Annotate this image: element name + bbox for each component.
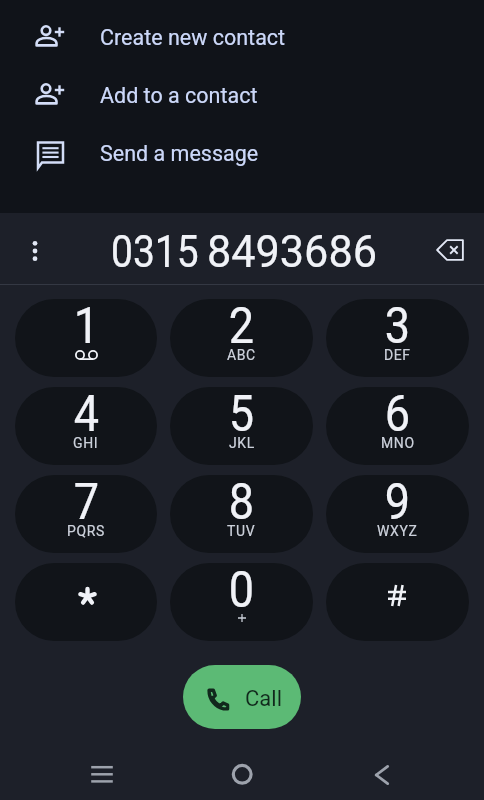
button[interactable]: Back — [355, 748, 407, 800]
staticText: 7 — [73, 475, 99, 532]
button[interactable]: 8 — [170, 475, 313, 553]
staticText: 1 — [73, 299, 99, 356]
staticText: 0 — [228, 563, 254, 620]
staticText: ABC — [227, 347, 256, 363]
staticText: DEF — [384, 347, 411, 363]
button[interactable]: 7 — [15, 475, 157, 553]
staticText: 4 — [73, 387, 99, 444]
button[interactable]: Create new contact — [0, 9, 484, 67]
button[interactable]: 5 — [170, 387, 313, 465]
staticText: WXYZ — [377, 523, 418, 539]
staticText: JKL — [229, 435, 255, 451]
staticText: Create new contact — [100, 25, 286, 50]
staticText: 8 — [228, 475, 254, 532]
button[interactable]: Backspace — [430, 230, 470, 270]
button[interactable]: 1 — [15, 299, 157, 377]
button[interactable] — [326, 563, 469, 641]
button[interactable]: Recent apps — [76, 748, 128, 800]
button[interactable]: 3 — [326, 299, 469, 377]
button[interactable]: 0 — [170, 563, 313, 641]
button[interactable]: Call — [183, 665, 301, 729]
button[interactable]: Send a message — [0, 125, 484, 183]
staticText: Send a message — [100, 141, 259, 166]
staticText: 9 — [384, 475, 411, 532]
staticText: MNO — [381, 435, 415, 451]
staticText: 2 — [228, 299, 254, 356]
button[interactable]: Add to a contact — [0, 67, 484, 125]
button[interactable]: 6 — [326, 387, 469, 465]
staticText: 3 — [384, 299, 411, 356]
button[interactable]: 2 — [170, 299, 313, 377]
staticText: 5 — [228, 387, 254, 444]
staticText: Add to a contact — [100, 83, 258, 108]
staticText: Call — [245, 686, 282, 712]
button[interactable]: 4 — [15, 387, 157, 465]
staticText: GHI — [73, 435, 99, 451]
button[interactable] — [15, 563, 157, 641]
button[interactable]: Home — [216, 748, 268, 800]
staticText: PQRS — [67, 523, 105, 539]
staticText: 8493686 — [207, 225, 378, 278]
button[interactable]: 9 — [326, 475, 469, 553]
button[interactable]: More options — [20, 236, 50, 266]
staticText: TUV — [227, 523, 256, 539]
staticText: 6 — [384, 387, 411, 444]
staticText: 0315 — [111, 225, 199, 278]
